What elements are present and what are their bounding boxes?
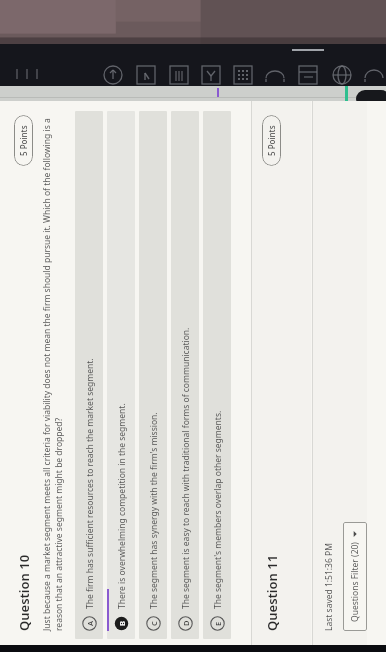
- button[interactable]: B: [107, 111, 135, 639]
- staticText: Question 11: [263, 554, 281, 631]
- button[interactable]: 5 Points: [262, 115, 281, 166]
- staticText: The segment is easy to reach with tradit…: [180, 327, 192, 609]
- button[interactable]: E: [203, 111, 231, 639]
- button[interactable]: Questions Filter (20): [343, 522, 367, 631]
- button[interactable]: A: [75, 111, 103, 639]
- staticText: A: [85, 620, 95, 626]
- staticText: Question 10: [15, 554, 33, 631]
- staticText: Just because a market segment meets all …: [41, 117, 65, 631]
- button[interactable]: D: [171, 111, 199, 639]
- staticText: E: [213, 621, 223, 626]
- staticText: C: [149, 621, 159, 626]
- staticText: Questions Filter (20): [349, 542, 361, 622]
- staticText: The segment has synergy with the firm's …: [148, 412, 160, 609]
- staticText: B: [117, 621, 127, 626]
- staticText: 5 Points: [18, 125, 29, 156]
- staticText: There is overwhelming competition in the…: [116, 403, 128, 609]
- staticText: D: [181, 620, 191, 626]
- staticText: The firm has sufficient resources to rea…: [84, 358, 96, 609]
- button[interactable]: C: [139, 111, 167, 639]
- staticText: The segment's members overlap other segm…: [212, 410, 224, 609]
- staticText: 5 Points: [266, 125, 277, 156]
- button[interactable]: 5 Points: [14, 115, 33, 166]
- staticText: Last saved 1:51:36 PM: [323, 543, 335, 631]
